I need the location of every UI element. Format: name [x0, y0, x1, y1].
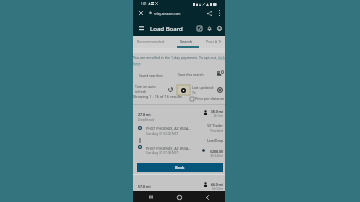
- staticText: Post A Tr: [206, 39, 222, 44]
- staticText: Provided: [210, 129, 223, 133]
- staticText: Saved searches: [139, 73, 163, 77]
- staticText: Sun Aug 31 07:08 MST: [146, 151, 179, 155]
- staticText: Price per distance: [195, 96, 225, 101]
- staticText: PHX7 PHOENIX, AZ 850A...: [146, 146, 192, 151]
- button[interactable]: Save this search: [178, 71, 204, 78]
- staticText: Turn on auto: [135, 84, 156, 89]
- staticText: Live/Drop: [207, 138, 223, 143]
- button[interactable]: Notifications: [204, 23, 214, 33]
- staticText: 5h 52m: [212, 187, 223, 191]
- staticText: 57.8 mi: [138, 184, 151, 189]
- button[interactable]: Home: [172, 191, 186, 202]
- staticText: 38.0 mi: [210, 109, 223, 114]
- staticText: You are enrolled in the 1-day payments. …: [133, 55, 225, 60]
- button[interactable]: Back: [200, 191, 214, 202]
- button[interactable]: Price per distance: [190, 95, 225, 102]
- button[interactable]: Post A Tr: [202, 36, 225, 46]
- button[interactable]: Refresh: [166, 85, 174, 93]
- staticText: relay.amazon.com: [154, 12, 181, 16]
- staticText: $6.34/mi: [210, 154, 223, 158]
- button[interactable]: Close tab: [137, 9, 145, 17]
- button[interactable]: Filters: [215, 69, 224, 78]
- button[interactable]: Messages: [194, 23, 204, 33]
- staticText: Book: [175, 165, 185, 170]
- staticText: PHX7 PHOENIX, AZ 850A...: [146, 126, 192, 131]
- button[interactable]: Recent apps: [144, 191, 158, 202]
- button[interactable]: Menu: [136, 23, 146, 33]
- button[interactable]: Search: [174, 36, 199, 46]
- staticText: refresh: [135, 89, 147, 94]
- button[interactable]: Saved searches: [139, 71, 163, 78]
- staticText: 4h 5m: [213, 114, 223, 118]
- button[interactable]: Recommended: [134, 36, 168, 46]
- staticText: Load Board: [150, 24, 183, 32]
- staticText: here: [133, 61, 141, 66]
- button[interactable]: Start auto refresh: [177, 85, 190, 95]
- button[interactable]: Book: [137, 163, 223, 172]
- button[interactable]: Settings: [215, 85, 224, 94]
- button[interactable]: Share: [205, 9, 213, 17]
- staticText: 27.8 mi: [138, 112, 151, 117]
- staticText: Deadhead: [138, 117, 154, 121]
- staticText: Save this search: [178, 72, 204, 77]
- staticText: Last updated:: [192, 85, 214, 90]
- staticText: 1:01: [141, 2, 147, 6]
- staticText: 44.0 mi: [210, 182, 223, 187]
- staticText: $288.00: [210, 149, 223, 154]
- staticText: 7s: [192, 90, 196, 95]
- staticText: Recommended: [137, 39, 165, 44]
- button[interactable]: Help: [214, 23, 224, 33]
- staticText: Showing 1 - 16 of 16 results: [133, 94, 182, 99]
- staticText: 53' Trailer: [207, 123, 223, 128]
- staticText: Search: [180, 39, 193, 44]
- button[interactable]: More options: [215, 9, 223, 17]
- staticText: 0: [221, 68, 224, 75]
- staticText: Sun Aug 31 03:00 MST: [146, 132, 179, 136]
